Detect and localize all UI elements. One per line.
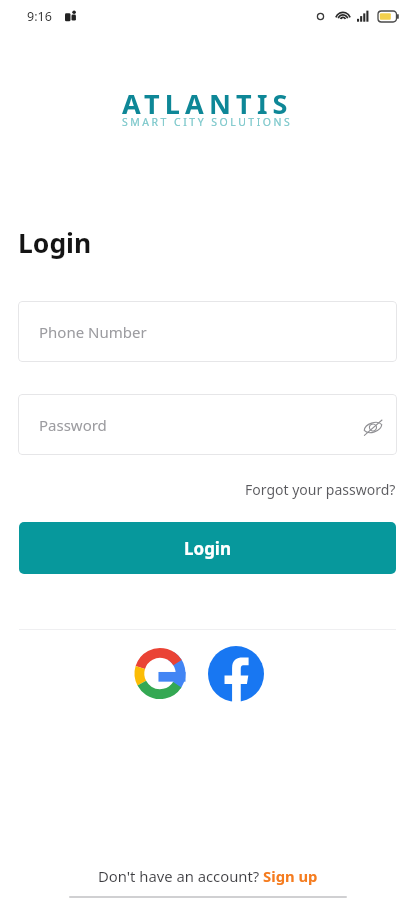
button[interactable]: Password (18, 394, 397, 455)
staticText: 9:16 (27, 8, 52, 25)
staticText: Login (18, 225, 92, 261)
button[interactable]: Don't have an account? Sign up (98, 866, 318, 886)
staticText: Password (39, 415, 107, 435)
staticText: SMART CITY SOLUTIONS (122, 115, 293, 129)
button[interactable]: Login (19, 522, 396, 574)
button[interactable]: Sign in with Google (127, 641, 197, 706)
button[interactable]: Forgot your password? (245, 478, 396, 501)
staticText: ATLANTIS (122, 85, 293, 122)
button[interactable]: Phone Number (18, 301, 397, 362)
button[interactable]: Show password (359, 413, 387, 441)
staticText: Phone Number (39, 322, 147, 342)
button[interactable]: Sign in with Facebook (203, 641, 271, 706)
staticText: Login (184, 537, 232, 560)
